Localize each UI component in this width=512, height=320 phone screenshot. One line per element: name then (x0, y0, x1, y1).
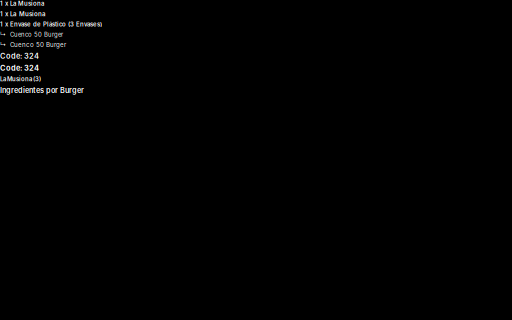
staticText: Code: 324 (0, 64, 39, 73)
staticText: ↳ Cuenco 50 Burger (0, 41, 66, 48)
staticText: 1 x Envase de Plástico (3 Envases) (0, 21, 102, 28)
staticText: Ingredientes por Burger (0, 86, 84, 95)
staticText: ↳ Cuenco 50 Burger (0, 31, 63, 38)
staticText: La Musiona (3) (0, 76, 41, 83)
staticText: 1 x La Musiona (0, 10, 46, 18)
staticText: 1 x La Musiona (0, 0, 44, 7)
staticText: Code: 324 (0, 51, 39, 60)
